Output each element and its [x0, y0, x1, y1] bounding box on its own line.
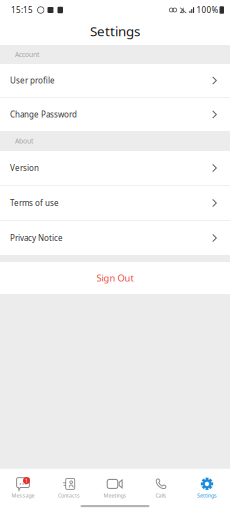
staticText: Privacy Notice — [10, 233, 63, 243]
staticText: Contacts — [58, 492, 80, 499]
button[interactable]: Sign Out — [0, 262, 230, 294]
staticText: 15:15 — [11, 5, 33, 15]
button[interactable]: User profile — [0, 64, 230, 98]
staticText: 100% — [196, 5, 218, 15]
staticText: User profile — [10, 75, 55, 86]
button[interactable]: Calls — [138, 469, 184, 499]
staticText: Settings — [90, 22, 140, 40]
button[interactable]: Contacts — [46, 469, 92, 499]
staticText: Message — [11, 492, 34, 499]
staticText: Calls — [155, 492, 166, 499]
button[interactable]: Change Password — [0, 98, 230, 131]
staticText: Terms of use — [10, 198, 59, 208]
staticText: Version — [10, 163, 39, 173]
staticText: Sign Out — [96, 272, 133, 284]
button[interactable]: 1 — [0, 469, 46, 499]
staticText: Settings — [197, 492, 217, 499]
staticText: Meetings — [103, 492, 126, 499]
staticText: Account — [15, 50, 39, 59]
button[interactable]: Version — [0, 151, 230, 186]
button[interactable]: Terms of use — [0, 186, 230, 221]
staticText: About — [15, 137, 33, 145]
staticText: Change Password — [10, 109, 77, 120]
staticText: 1 — [25, 477, 28, 484]
button[interactable]: Meetings — [92, 469, 138, 499]
button[interactable]: Privacy Notice — [0, 221, 230, 255]
button[interactable]: Settings — [184, 469, 230, 499]
